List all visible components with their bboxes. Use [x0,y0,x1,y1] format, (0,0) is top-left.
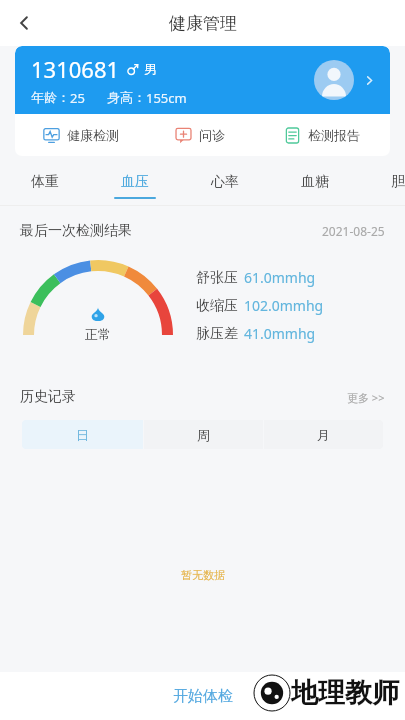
staticText: 更多 >> [347,390,385,405]
button[interactable]: 开始体检 [0,672,405,720]
staticText: 年龄： [31,89,70,105]
staticText: 男 [144,61,157,77]
staticText: 健康管理 [169,13,237,34]
button[interactable]: 周 [144,420,263,449]
button[interactable]: Back [6,5,42,41]
staticText: 周 [197,427,210,443]
staticText: 最后一次检测结果 [20,222,132,240]
staticText: 健康检测 [67,127,119,143]
staticText: 25 [70,89,85,107]
staticText: 收缩压 [196,297,238,315]
staticText: 2021-08-25 [322,223,385,239]
staticText: 问诊 [199,127,225,143]
button[interactable]: 更多 >> [347,390,385,405]
button[interactable]: 血糖 [290,167,340,205]
staticText: 月 [317,427,330,443]
staticText: 1310681 [31,54,120,84]
staticText: 检测报告 [308,127,360,143]
staticText: 61.0mmhg [244,268,316,287]
staticText: 正常 [85,326,111,342]
staticText: 日 [76,427,89,443]
staticText: 胆固 [391,173,405,191]
button[interactable]: 日 [22,420,143,449]
staticText: 41.0mmhg [244,324,316,343]
staticText: 血糖 [301,173,329,191]
staticText: 血压 [121,173,149,191]
staticText: 开始体检 [173,687,233,706]
staticText: 脉压差 [196,325,238,343]
staticText: 155cm [146,89,187,107]
staticText: 心率 [211,173,239,191]
button[interactable]: 健康检测 [15,114,146,156]
button[interactable]: 检测报告 [253,114,390,156]
staticText: 暂无数据 [181,568,225,582]
staticText: 历史记录 [20,388,76,406]
button[interactable]: 1310681 [15,46,390,114]
button[interactable]: 体重 [20,167,70,205]
button[interactable]: 胆固 [380,167,405,205]
button[interactable]: 问诊 [146,114,253,156]
staticText: 102.0mmhg [244,296,324,315]
button[interactable]: 心率 [200,167,250,205]
staticText: 舒张压 [196,269,238,287]
button[interactable]: 月 [264,420,383,449]
button[interactable]: 血压 [110,167,160,205]
staticText: 身高： [107,89,146,105]
staticText: 体重 [31,173,59,191]
staticText: 地理教师 [291,676,399,710]
